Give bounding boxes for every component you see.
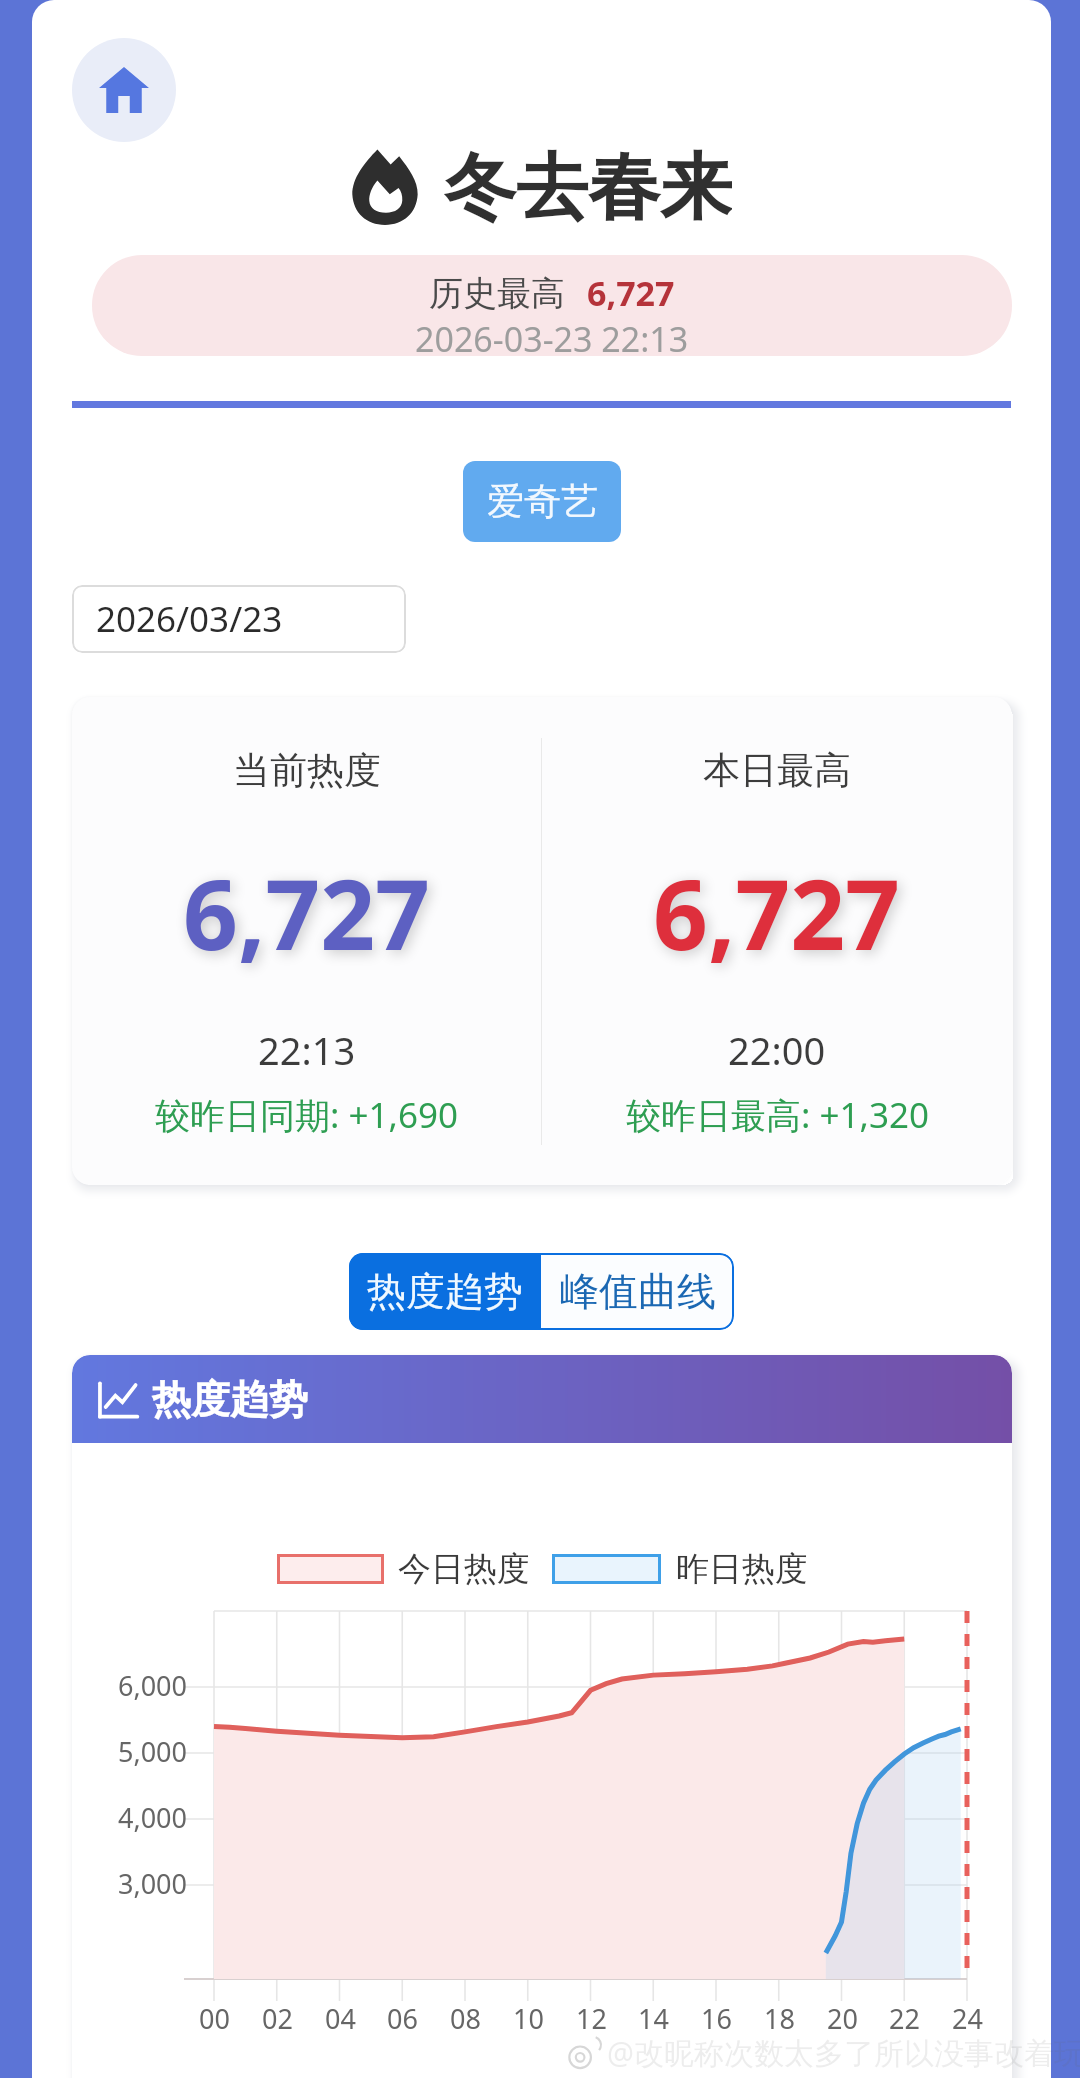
staticText: 6,727 — [653, 847, 901, 978]
staticText: 22:13 — [258, 1024, 356, 1076]
staticText: 6,727 — [183, 847, 431, 978]
button[interactable]: 热度趋势 — [349, 1253, 541, 1330]
button[interactable]: 2026/03/23 — [72, 585, 406, 653]
staticText: 22:00 — [728, 1024, 826, 1076]
staticText: 22 — [889, 2000, 920, 2037]
staticText: 24 — [952, 2000, 983, 2037]
staticText: 14 — [638, 2000, 669, 2037]
staticText: 峰值曲线 — [560, 1267, 716, 1316]
staticText: 00 — [199, 2000, 230, 2037]
button[interactable]: Home — [72, 38, 176, 142]
staticText: 爱奇艺 — [487, 478, 598, 525]
button[interactable]: 峰值曲线 — [541, 1253, 734, 1330]
staticText: 10 — [513, 2000, 544, 2037]
staticText: @改昵称次数太多了所以没事改着玩 — [607, 2032, 1080, 2073]
staticText: 昨日热度 — [676, 1548, 808, 1590]
staticText: 16 — [701, 2000, 732, 2037]
staticText: 较昨日同期: +1,690 — [155, 1091, 458, 1139]
staticText: 12 — [576, 2000, 607, 2037]
staticText: 2026-03-23 22:13 — [415, 316, 689, 356]
staticText: 热度趋势 — [367, 1267, 523, 1316]
staticText: 冬去春来 — [444, 143, 732, 231]
staticText: 历史最高 — [429, 272, 565, 315]
staticText: 本日最高 — [703, 747, 851, 794]
staticText: 6,727 — [587, 270, 675, 316]
staticText: 18 — [764, 2000, 795, 2037]
staticText: 5,000 — [118, 1733, 188, 1770]
staticText: 6,000 — [118, 1667, 188, 1704]
staticText: 今日热度 — [398, 1548, 530, 1590]
staticText: 20 — [827, 2000, 858, 2037]
staticText: 02 — [262, 2000, 293, 2037]
staticText: 当前热度 — [233, 747, 381, 794]
staticText: 较昨日最高: +1,320 — [626, 1091, 929, 1139]
staticText: 04 — [325, 2000, 356, 2037]
staticText: 热度趋势 — [152, 1375, 308, 1424]
staticText: 08 — [450, 2000, 481, 2037]
button[interactable]: 爱奇艺 — [463, 461, 621, 542]
staticText: 06 — [387, 2000, 418, 2037]
staticText: 3,000 — [118, 1865, 188, 1902]
staticText: 4,000 — [118, 1799, 188, 1836]
staticText: 2026/03/23 — [96, 595, 283, 643]
